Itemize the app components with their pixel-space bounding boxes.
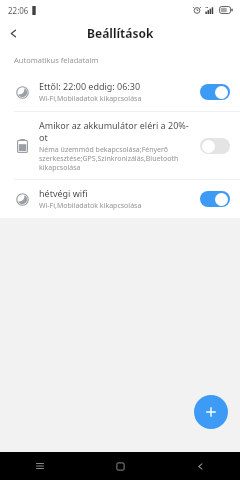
staticText: Amikor az akkumulátor eléri a 20%-ot: [39, 119, 194, 143]
button[interactable]: Home: [80, 452, 160, 480]
staticText: hétvégi wifi: [39, 187, 88, 199]
button[interactable]: Recent apps: [0, 452, 80, 480]
staticText: Automatikus feladataim: [14, 55, 99, 65]
staticText: 22:06: [8, 5, 29, 16]
button[interactable]: On: [200, 191, 230, 207]
button[interactable]: Amikor az akkumulátor eléri a 20%-ot: [0, 112, 240, 179]
staticText: Wi-Fi,Mobiladatok kikapcsolása: [39, 201, 142, 211]
button[interactable]: Back: [160, 452, 240, 480]
button[interactable]: Off: [200, 138, 230, 154]
staticText: Beállítások: [87, 25, 154, 41]
button[interactable]: Ettől: 22:00 eddig: 06:30: [0, 73, 240, 111]
button[interactable]: Add: [194, 395, 228, 429]
staticText: Wi-Fi,Mobiladatok kikapcsolása: [39, 94, 142, 104]
staticText: Ettől: 22:00 eddig: 06:30: [39, 80, 141, 92]
button[interactable]: Back: [0, 20, 26, 46]
button[interactable]: On: [200, 84, 230, 100]
button[interactable]: hétvégi wifi: [0, 180, 240, 218]
staticText: Néma üzemmód bekapcsolása;Fényerő szerke…: [39, 145, 179, 172]
